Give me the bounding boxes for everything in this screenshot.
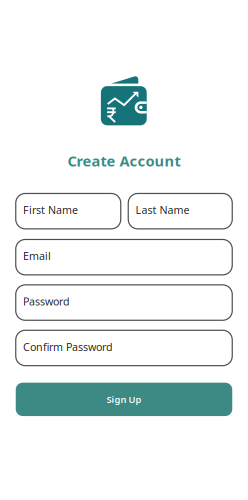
staticText: Password [23, 294, 70, 308]
button[interactable]: Confirm Password [16, 330, 232, 366]
staticText: First Name [23, 203, 78, 217]
button[interactable]: Last Name [128, 193, 232, 229]
staticText: Create Account [67, 151, 180, 170]
button[interactable]: Password [16, 285, 232, 320]
staticText: Email [23, 249, 51, 263]
staticText: Confirm Password [23, 340, 113, 354]
button[interactable]: First Name [16, 193, 121, 229]
button[interactable]: Email [16, 239, 232, 275]
staticText: Sign Up [106, 393, 141, 406]
staticText: Last Name [135, 203, 189, 217]
button[interactable]: Sign Up [16, 383, 232, 416]
